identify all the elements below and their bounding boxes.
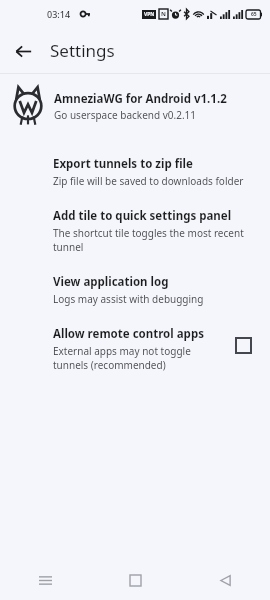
button[interactable]: Allow remote control apps checkbox xyxy=(230,332,256,358)
button[interactable]: View application log xyxy=(0,264,270,316)
staticText: Export tunnels to zip file xyxy=(53,156,193,172)
staticText: External apps may not toggle tunnels (re… xyxy=(53,344,222,372)
staticText: The shortcut tile toggles the most recen… xyxy=(53,226,256,254)
staticText: Go userspace backend v0.2.11 xyxy=(54,108,197,122)
staticText: 03:14 xyxy=(47,8,71,20)
staticText: Logs may assist with debugging xyxy=(53,292,204,306)
button[interactable]: Add tile to quick settings panel xyxy=(0,198,270,264)
staticText: Allow remote control apps xyxy=(53,326,204,342)
button[interactable]: Back xyxy=(180,560,270,600)
button[interactable]: AmneziaWG for Android v1.1.2 xyxy=(0,82,270,130)
button[interactable]: Export tunnels to zip file xyxy=(0,146,270,198)
staticText: Zip file will be saved to downloads fold… xyxy=(53,174,244,188)
button[interactable]: Back xyxy=(6,34,40,68)
button[interactable]: Recent apps xyxy=(0,560,90,600)
button[interactable]: Allow remote control apps xyxy=(0,316,270,382)
staticText: AmneziaWG for Android v1.1.2 xyxy=(54,91,227,107)
staticText: Add tile to quick settings panel xyxy=(53,208,232,224)
staticText: Settings xyxy=(50,39,115,62)
button[interactable]: Home xyxy=(90,560,180,600)
staticText: N xyxy=(161,10,166,18)
staticText: VPN xyxy=(144,11,155,18)
staticText: View application log xyxy=(53,274,169,290)
staticText: 65 xyxy=(251,11,257,18)
